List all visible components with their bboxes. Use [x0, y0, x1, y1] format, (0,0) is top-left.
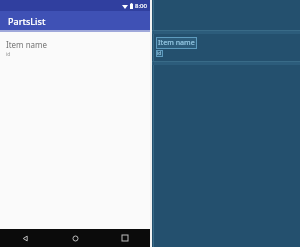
staticText: Item name [158, 38, 195, 48]
button[interactable]: Item name [0, 32, 150, 63]
button[interactable]: Back [0, 229, 50, 247]
staticText: Item name [6, 39, 48, 50]
button[interactable]: Recent apps [100, 229, 150, 247]
staticText: id [6, 51, 11, 58]
button[interactable]: Home [50, 229, 100, 247]
staticText: 8:00 [135, 2, 147, 10]
staticText: id [157, 50, 162, 57]
staticText: PartsList [8, 15, 46, 27]
